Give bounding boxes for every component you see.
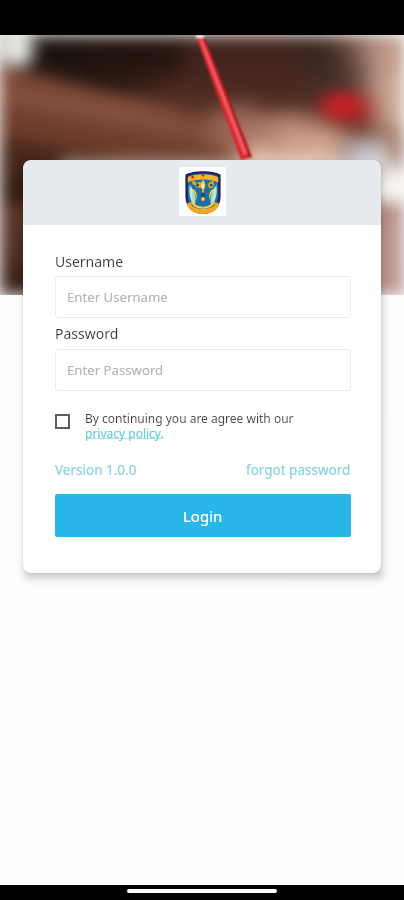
button[interactable]: By continuing you are agree with our xyxy=(55,410,351,442)
staticText: Username xyxy=(55,252,124,271)
button[interactable]: Enter Password xyxy=(55,349,351,391)
staticText: privacy policy. xyxy=(85,425,164,441)
button[interactable]: forgot password xyxy=(246,461,351,479)
staticText: Login xyxy=(183,506,223,526)
staticText: By continuing you are agree with our xyxy=(85,410,294,426)
staticText: Enter Password xyxy=(67,361,164,379)
button[interactable]: Version 1.0.0 xyxy=(55,461,137,479)
button[interactable]: Login xyxy=(55,494,351,537)
staticText: Enter Username xyxy=(67,288,168,306)
button[interactable]: Enter Username xyxy=(55,276,351,318)
staticText: Password xyxy=(55,324,119,343)
